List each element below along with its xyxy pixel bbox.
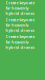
staticText: Create keynote for heavenly hybrid drone… [5,34,34,50]
staticText: Create keynote for heavenly hybrid drone… [5,0,34,16]
staticText: Create keynote for heavenly hybrid drone… [5,17,34,33]
